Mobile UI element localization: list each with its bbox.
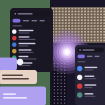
button[interactable]: All [12,19,20,23]
button[interactable]: Conversation [77,82,104,91]
button[interactable]: All [77,55,85,58]
button[interactable]: Conversation [12,54,51,61]
button[interactable]: Search [12,11,51,17]
button[interactable]: Unread [23,20,29,21]
button[interactable]: Conversation [12,61,51,67]
button[interactable]: Groups [94,56,99,57]
button[interactable]: Conversation [77,73,104,82]
button[interactable]: Conversation [77,64,104,73]
button[interactable]: Conversation [12,41,51,48]
button[interactable]: Conversation [77,91,104,99]
button[interactable]: Search [77,47,104,53]
button[interactable]: Starred [39,20,45,21]
button[interactable]: Conversation [12,35,51,41]
button[interactable]: Conversation [12,28,51,35]
button[interactable]: Conversation [12,48,51,54]
